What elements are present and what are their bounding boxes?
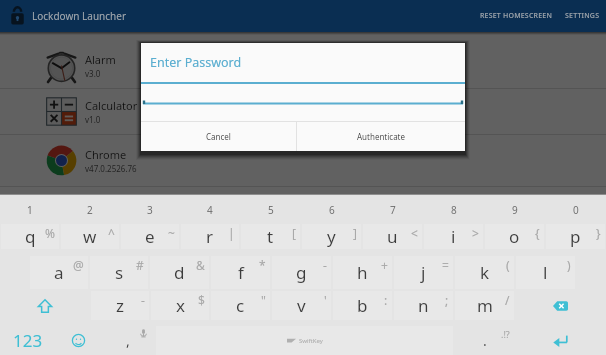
staticText: } (596, 225, 601, 241)
button[interactable]: Calculator (0, 89, 606, 135)
staticText: u (387, 225, 398, 248)
staticText: | (228, 225, 235, 241)
staticText: Calculator (85, 98, 138, 113)
button[interactable]: y (302, 224, 361, 249)
staticText: : (384, 292, 388, 308)
button[interactable]: RESET HOMESCREEN (474, 0, 559, 32)
button[interactable]: 6 (301, 195, 362, 222)
button[interactable]: a (30, 256, 88, 289)
button[interactable]: 7 (362, 195, 423, 222)
button[interactable]: r (181, 224, 239, 249)
button[interactable]: SETTINGS (559, 0, 606, 32)
staticText: SwiftKey (299, 337, 323, 345)
button[interactable]: 3 (120, 195, 180, 222)
staticText: Cancel (206, 131, 231, 142)
button[interactable]: p (546, 224, 605, 249)
button[interactable]: 8 (423, 195, 484, 222)
staticText: @ (73, 257, 84, 273)
button[interactable]: Emoji (56, 326, 100, 355)
staticText: ( (506, 257, 510, 273)
staticText: 6 (329, 203, 335, 217)
button[interactable]: h (333, 256, 392, 289)
button[interactable]: Shift (1, 291, 89, 320)
button[interactable]: , (100, 326, 155, 355)
staticText: ~ (168, 225, 175, 241)
staticText: Authenticate (357, 131, 406, 142)
staticText: .!? (501, 328, 510, 340)
button[interactable]: s (90, 256, 148, 289)
staticText: > (472, 225, 479, 241)
button[interactable]: m (455, 291, 514, 320)
staticText: 7 (390, 203, 396, 217)
button[interactable]: d (150, 256, 209, 289)
button[interactable]: l (516, 256, 575, 289)
staticText: RESET HOMESCREEN (480, 11, 553, 21)
button[interactable]: t (241, 224, 300, 249)
button[interactable]: Chrome (0, 135, 606, 187)
button[interactable]: c (211, 291, 270, 320)
staticText: Alarm (85, 52, 116, 67)
button[interactable]: w (61, 224, 119, 249)
button[interactable]: 1 (0, 195, 60, 222)
staticText: v47.0.2526.76 (85, 163, 137, 174)
staticText: j (421, 261, 426, 284)
staticText: % (45, 225, 55, 241)
staticText: v1.0 (85, 114, 101, 125)
staticText: r (206, 225, 214, 248)
button[interactable]: 9 (484, 195, 545, 222)
button[interactable]: Cancel (141, 122, 296, 151)
button[interactable]: q (1, 224, 59, 249)
button[interactable]: x (151, 291, 209, 320)
staticText: $ (198, 292, 205, 308)
button[interactable]: f (211, 256, 270, 289)
button[interactable]: 2 (60, 195, 120, 222)
staticText: h (357, 261, 368, 284)
button[interactable]: .!? (454, 326, 515, 355)
button[interactable]: n (394, 291, 453, 320)
staticText: b (357, 294, 368, 317)
button[interactable]: 123 (0, 326, 56, 355)
button[interactable]: z (91, 291, 149, 320)
staticText: 3 (147, 203, 153, 217)
staticText: 123 (13, 329, 43, 352)
staticText: ' (324, 292, 327, 308)
staticText: Lockdown Launcher (32, 9, 127, 23)
button[interactable]: j (394, 256, 453, 289)
staticText: < (411, 225, 418, 241)
button[interactable]: e (121, 224, 179, 249)
button[interactable]: u (363, 224, 422, 249)
staticText: t (267, 225, 274, 248)
button[interactable]: o (485, 224, 544, 249)
staticText: a (54, 261, 64, 284)
staticText: c (236, 294, 245, 317)
staticText: ] (353, 225, 357, 241)
button[interactable]: v (272, 291, 331, 320)
button[interactable]: Enter (515, 326, 606, 355)
staticText: Chrome (85, 147, 127, 162)
staticText: 8 (451, 203, 457, 217)
button[interactable]: 5 (240, 195, 301, 222)
button[interactable]: 4 (180, 195, 240, 222)
staticText: 2 (87, 203, 93, 217)
button[interactable]: g (272, 256, 331, 289)
staticText: = (442, 257, 449, 273)
staticText: ^ (108, 225, 115, 241)
button[interactable]: 0 (545, 195, 606, 222)
button[interactable]: Authenticate (297, 122, 465, 151)
button[interactable]: i (424, 224, 483, 249)
button[interactable]: Alarm (0, 42, 606, 89)
staticText: e (145, 225, 155, 248)
staticText: l (543, 261, 548, 284)
staticText: g (296, 261, 307, 284)
staticText: 0 (573, 203, 579, 217)
staticText: - (141, 292, 145, 308)
staticText: w (83, 225, 97, 248)
button[interactable]: k (455, 256, 514, 289)
button[interactable]: Space (156, 326, 453, 355)
button[interactable]: Backspace (516, 291, 605, 320)
other: Lockdown (11, 7, 24, 25)
staticText: - (323, 257, 327, 273)
staticText: . (483, 331, 487, 350)
button[interactable]: b (333, 291, 392, 320)
staticText: y (327, 225, 336, 248)
